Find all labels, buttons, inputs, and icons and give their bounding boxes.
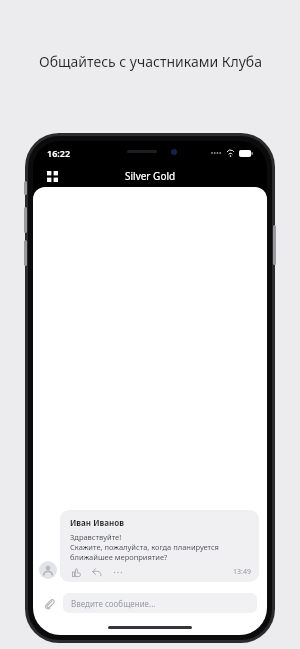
button[interactable]: Menu (41, 165, 63, 187)
button[interactable]: Attach file (41, 595, 57, 611)
button[interactable]: Иван Иванов (60, 510, 259, 582)
staticText: Иван Иванов (70, 517, 125, 528)
staticText: Введите сообщение... (71, 598, 156, 609)
staticText: 13:49 (233, 567, 251, 577)
button[interactable]: Введите сообщение... (63, 593, 257, 613)
button[interactable]: Reply (91, 566, 103, 578)
staticText: Общайтесь с участниками Клуба (39, 52, 262, 71)
staticText: Здравствуйте! Скажите, пожалуйста, когда… (70, 532, 219, 562)
button[interactable]: Like (70, 566, 82, 578)
button[interactable]: Avatar (39, 561, 57, 579)
staticText: Silver Gold (125, 169, 176, 183)
button[interactable]: More (112, 566, 124, 578)
staticText: 16:22 (47, 147, 71, 159)
